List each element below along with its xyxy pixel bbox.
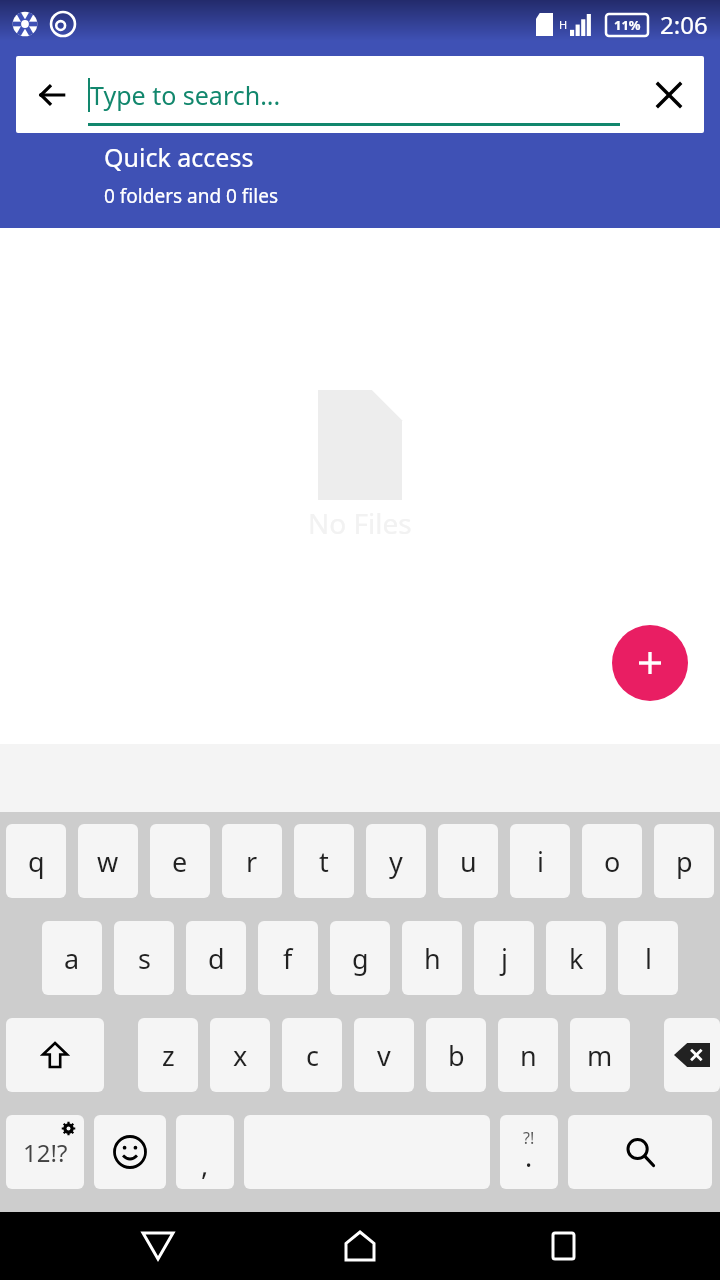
button[interactable]: Back: [113, 1212, 203, 1280]
staticText: h: [424, 940, 441, 977]
staticText: g: [352, 940, 369, 977]
button[interactable]: x: [210, 1018, 270, 1092]
button[interactable]: t: [294, 824, 354, 898]
button[interactable]: Add: [612, 625, 688, 701]
staticText: b: [448, 1037, 465, 1074]
button[interactable]: q: [6, 824, 66, 898]
button[interactable]: o: [582, 824, 642, 898]
staticText: r: [246, 843, 258, 880]
staticText: t: [319, 843, 329, 880]
staticText: Type to search...: [90, 78, 281, 112]
button[interactable]: v: [354, 1018, 414, 1092]
button[interactable]: j: [474, 921, 534, 995]
button[interactable]: Shift: [6, 1018, 104, 1092]
staticText: j: [501, 940, 508, 977]
button[interactable]: ?!: [500, 1115, 558, 1189]
button[interactable]: m: [570, 1018, 630, 1092]
staticText: 0 folders and 0 files: [104, 183, 279, 209]
staticText: u: [460, 843, 477, 880]
button[interactable]: r: [222, 824, 282, 898]
button[interactable]: y: [366, 824, 426, 898]
button[interactable]: s: [114, 921, 174, 995]
staticText: c: [306, 1037, 319, 1074]
button[interactable]: l: [618, 921, 678, 995]
button[interactable]: p: [654, 824, 714, 898]
button[interactable]: g: [330, 921, 390, 995]
button[interactable]: i: [510, 824, 570, 898]
staticText: l: [645, 940, 652, 977]
button[interactable]: d: [186, 921, 246, 995]
button[interactable]: u: [438, 824, 498, 898]
staticText: a: [64, 940, 80, 977]
staticText: y: [389, 843, 403, 880]
button[interactable]: Clear: [634, 56, 704, 133]
button[interactable]: b: [426, 1018, 486, 1092]
staticText: z: [162, 1037, 175, 1074]
button[interactable]: f: [258, 921, 318, 995]
staticText: n: [520, 1037, 537, 1074]
button[interactable]: w: [78, 824, 138, 898]
button[interactable]: k: [546, 921, 606, 995]
staticText: o: [604, 843, 621, 880]
staticText: 11%: [614, 16, 641, 34]
button[interactable]: e: [150, 824, 210, 898]
staticText: w: [97, 843, 119, 880]
staticText: s: [138, 940, 151, 977]
button[interactable]: Search: [568, 1115, 712, 1189]
staticText: k: [569, 940, 584, 977]
staticText: 12!?: [23, 1136, 68, 1169]
staticText: e: [172, 843, 188, 880]
button[interactable]: Back: [16, 56, 88, 133]
button[interactable]: h: [402, 921, 462, 995]
staticText: x: [233, 1037, 248, 1074]
staticText: q: [28, 843, 45, 880]
staticText: d: [208, 940, 225, 977]
button[interactable]: Emoji: [94, 1115, 166, 1189]
staticText: ,: [201, 1146, 209, 1183]
button[interactable]: Type to search...: [88, 56, 620, 133]
button[interactable]: Home: [315, 1212, 405, 1280]
staticText: No Files: [308, 504, 412, 542]
staticText: i: [537, 843, 544, 880]
button[interactable]: Symbols: [6, 1115, 84, 1189]
button[interactable]: c: [282, 1018, 342, 1092]
button[interactable]: Recents: [518, 1212, 608, 1280]
staticText: ?!: [523, 1127, 535, 1149]
button[interactable]: z: [138, 1018, 198, 1092]
staticText: v: [377, 1037, 391, 1074]
staticText: p: [676, 843, 693, 880]
staticText: 2:06: [660, 8, 708, 41]
staticText: f: [283, 940, 293, 977]
button[interactable]: n: [498, 1018, 558, 1092]
staticText: Quick access: [104, 140, 254, 174]
staticText: .: [525, 1138, 533, 1175]
button[interactable]: ,: [176, 1115, 234, 1189]
button[interactable]: a: [42, 921, 102, 995]
staticText: m: [587, 1037, 613, 1074]
button[interactable]: Backspace: [664, 1018, 720, 1092]
staticText: H: [559, 17, 568, 32]
